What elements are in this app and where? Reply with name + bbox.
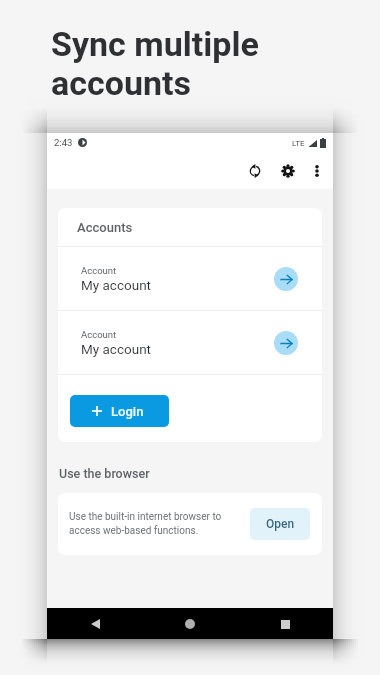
button[interactable]: Login [70,395,169,427]
button[interactable]: Back [80,609,110,639]
button[interactable]: Account [58,311,322,374]
staticText: My account [81,277,152,293]
staticText: Use the browser [59,466,150,481]
staticText: Sync multiple accounts [51,24,259,104]
staticText: Account [81,265,117,276]
staticText: 2:43 [54,137,73,148]
staticText: Login [111,404,144,419]
staticText: LTE [292,139,305,148]
staticText: My account [81,341,152,357]
staticText: Account [81,329,117,340]
button[interactable]: Sync [242,158,268,184]
button[interactable]: Open [250,508,310,540]
button[interactable]: Settings [275,158,301,184]
staticText: Accounts [77,220,133,235]
staticText: Use the built-in internet browser to acc… [69,511,273,537]
button[interactable]: More options [304,158,330,184]
staticText: Open [266,517,295,531]
button[interactable]: Account [58,247,322,310]
button[interactable]: Recents [270,609,300,639]
button[interactable]: Home [175,609,205,639]
